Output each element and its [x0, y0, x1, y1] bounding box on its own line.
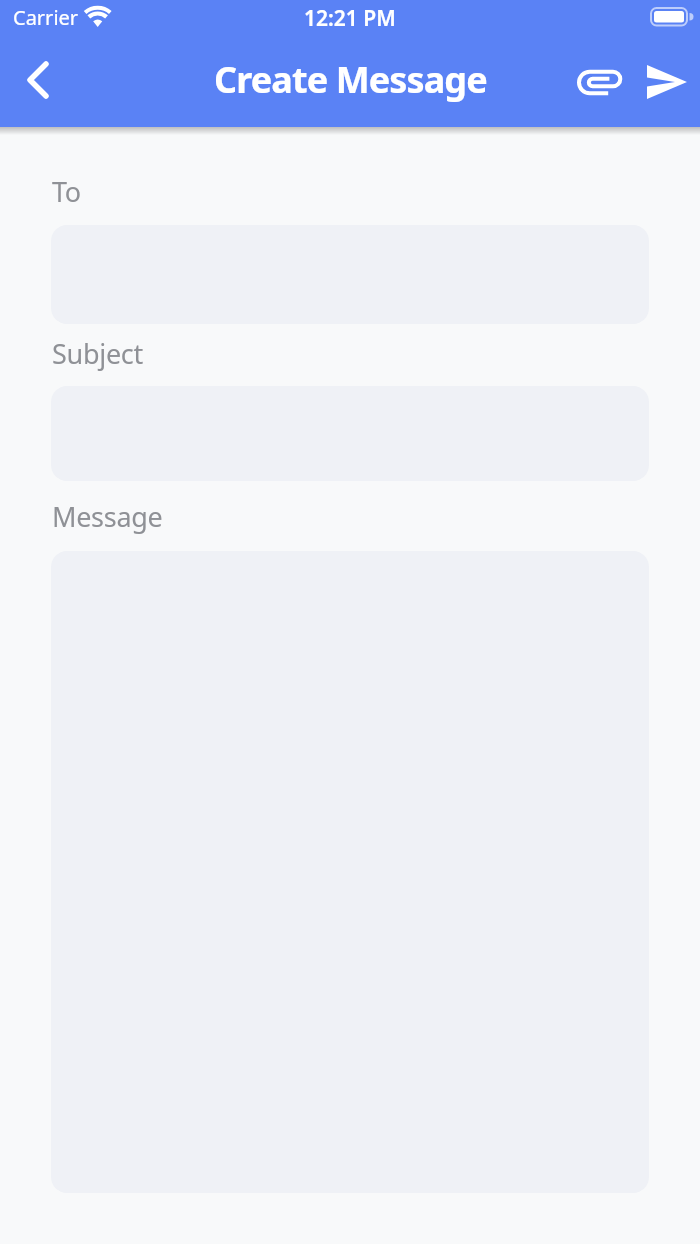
button[interactable]: [640, 56, 694, 108]
staticText: Carrier: [13, 4, 79, 31]
staticText: Create Message: [214, 55, 487, 104]
staticText: Message: [52, 498, 163, 535]
staticText: To: [52, 173, 81, 210]
staticText: 12:21 PM: [304, 4, 396, 33]
button[interactable]: [572, 58, 626, 106]
button[interactable]: [8, 50, 68, 110]
staticText: Subject: [52, 335, 143, 372]
